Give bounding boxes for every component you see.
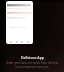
- button[interactable]: Tab 1: [6, 1, 33, 44]
- staticText: Delicious App: [21, 55, 44, 60]
- staticText: Order your favourite meals from the best…: [4, 61, 60, 68]
